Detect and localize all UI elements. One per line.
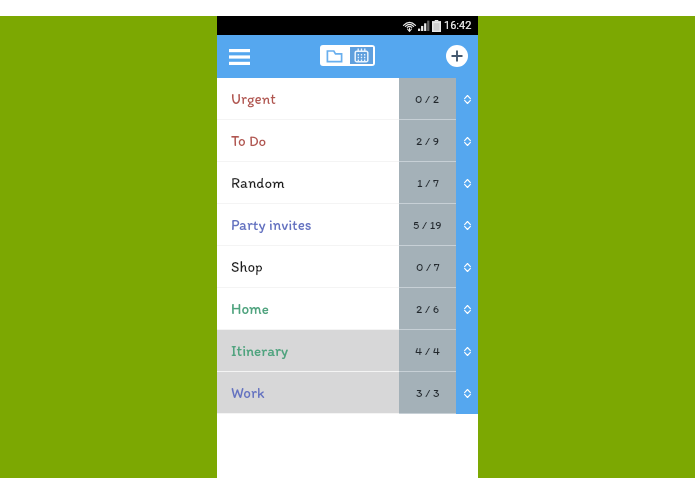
button[interactable]: Reorder <box>456 246 478 288</box>
staticText: To Do <box>231 132 267 150</box>
button[interactable]: Home <box>217 288 478 330</box>
staticText: Party invites <box>231 216 312 234</box>
staticText: Shop <box>231 258 263 276</box>
button[interactable]: Itinerary <box>217 330 478 372</box>
button[interactable]: Calendar <box>350 47 373 64</box>
button[interactable]: Reorder <box>456 330 478 372</box>
button[interactable]: Reorder <box>456 120 478 162</box>
button[interactable]: Reorder <box>456 372 478 414</box>
staticText: Work <box>231 384 265 402</box>
button[interactable]: Lists <box>320 45 348 66</box>
button[interactable]: Reorder <box>456 288 478 330</box>
staticText: Itinerary <box>231 342 288 360</box>
staticText: 3 / 3 <box>416 386 440 400</box>
staticText: Home <box>231 300 269 318</box>
staticText: 0 / 2 <box>415 92 440 106</box>
button[interactable]: Reorder <box>456 162 478 204</box>
staticText: Urgent <box>231 90 276 108</box>
button[interactable]: Random <box>217 162 478 204</box>
staticText: 2 / 9 <box>416 134 440 148</box>
staticText: Random <box>231 174 285 192</box>
staticText: 0 / 7 <box>416 260 440 274</box>
button[interactable]: Menu <box>223 41 255 73</box>
button[interactable]: To Do <box>217 120 478 162</box>
button[interactable]: Party invites <box>217 204 478 246</box>
button[interactable]: Reorder <box>456 204 478 246</box>
button[interactable]: Add list <box>446 45 468 67</box>
staticText: 5 / 19 <box>413 218 442 232</box>
staticText: 2 / 6 <box>416 302 440 316</box>
button[interactable]: Shop <box>217 246 478 288</box>
button[interactable]: Work <box>217 372 478 414</box>
staticText: 16:42 <box>444 19 472 32</box>
button[interactable]: Reorder <box>456 78 478 120</box>
staticText: 1 / 7 <box>417 176 439 190</box>
button[interactable]: Urgent <box>217 78 478 120</box>
staticText: 4 / 4 <box>415 344 440 358</box>
